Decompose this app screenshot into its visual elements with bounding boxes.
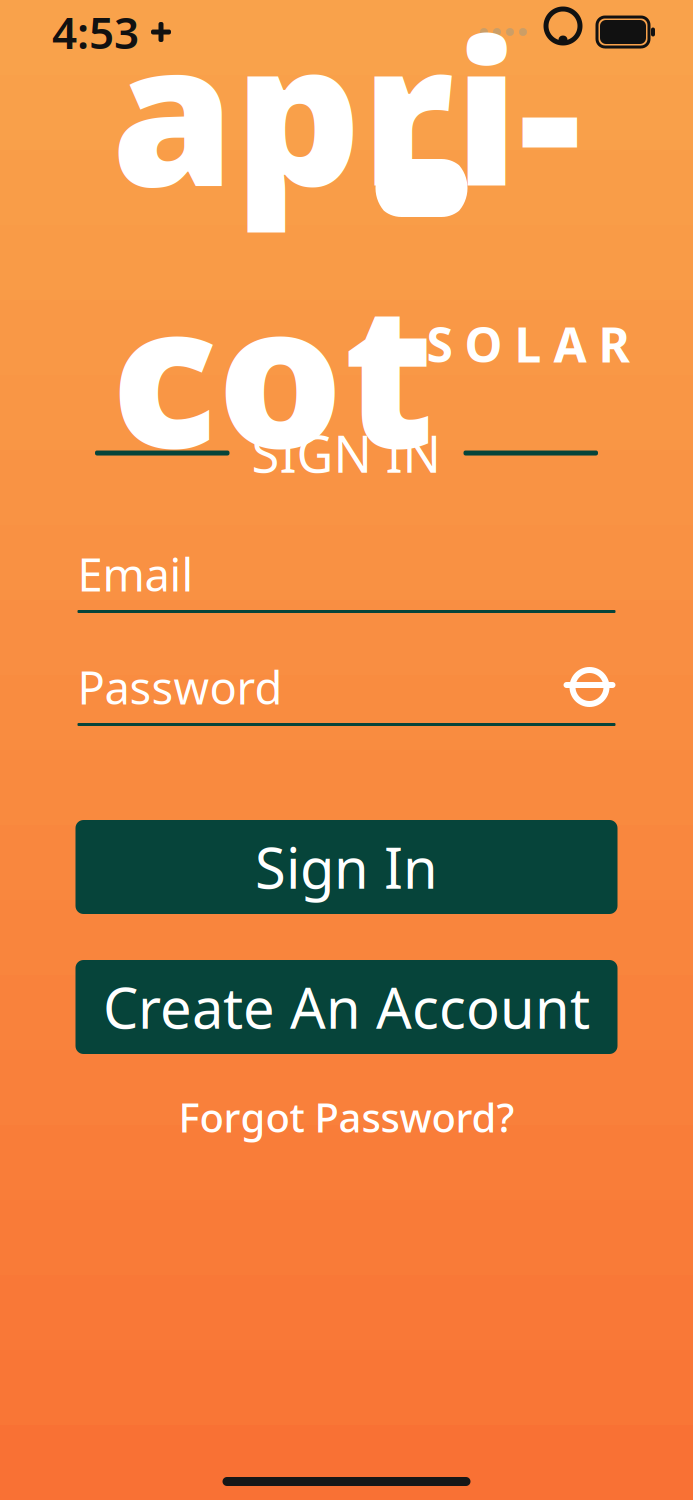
button[interactable]: Forgot Password?	[136, 1088, 556, 1146]
button[interactable]: Email	[77, 550, 615, 613]
staticText: S O L A R	[426, 312, 629, 376]
staticText: apricot	[111, 0, 581, 502]
staticText: SIGN IN	[251, 419, 441, 487]
staticText: Sign In	[255, 830, 438, 904]
staticText: 4:53	[52, 3, 139, 61]
button[interactable]: Create An Account	[75, 960, 617, 1054]
button[interactable]: Sign In	[75, 820, 617, 914]
staticText: Forgot Password?	[178, 1090, 514, 1143]
staticText: Create An Account	[103, 970, 590, 1044]
button[interactable]: Password	[77, 663, 615, 726]
staticText: Email	[77, 544, 193, 604]
staticText: Password	[77, 657, 282, 717]
